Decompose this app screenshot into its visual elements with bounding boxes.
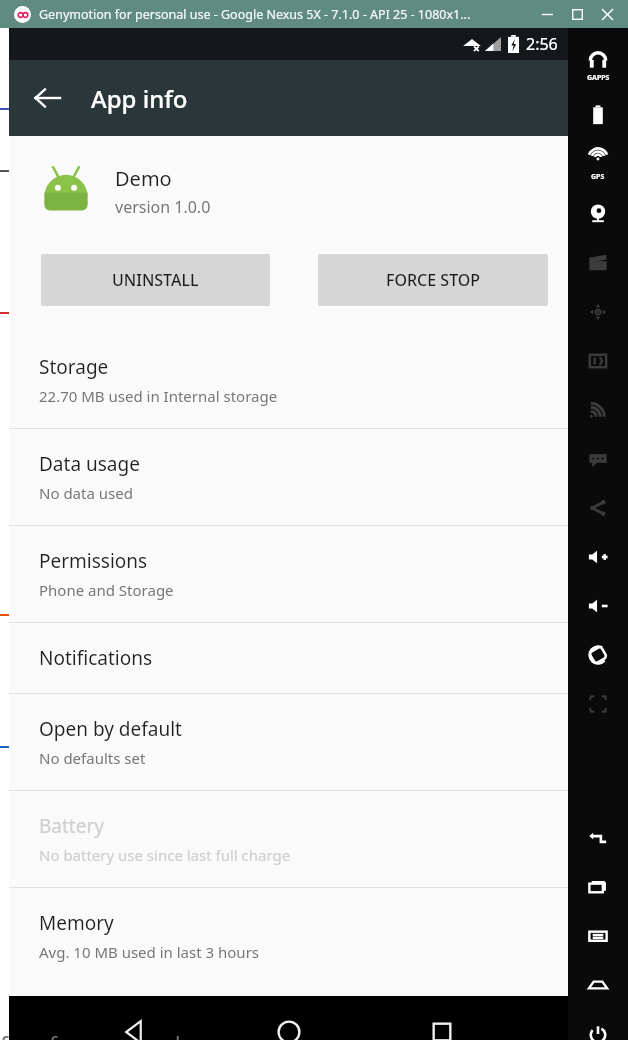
button[interactable]: FORCE STOP [318,254,548,306]
staticText: Battery [39,813,104,839]
staticText: Open by default [39,716,182,742]
button[interactable]: Home [261,1004,317,1040]
button[interactable]: Network [568,385,628,434]
staticText: Memory [39,910,114,936]
button[interactable]: Actual size 1:1 [568,679,628,728]
staticText: FORCE STOP [386,269,481,291]
staticText: free for personal use [0,1029,225,1040]
button[interactable]: Power [568,1009,628,1040]
button[interactable]: Notifications [9,623,568,693]
staticText: Genymotion for personal use - Google Nex… [39,6,471,23]
button[interactable]: Permissions [9,526,568,622]
staticText: Data usage [39,451,140,477]
staticText: Storage [39,354,109,380]
staticText: No data used [39,483,133,503]
button[interactable]: Accelerometer [568,287,628,336]
staticText: version 1.0.0 [115,196,211,218]
button[interactable]: Home [568,960,628,1009]
staticText: UNINSTALL [112,269,199,291]
button[interactable]: Camera [568,189,628,238]
button[interactable]: Volume down [568,581,628,630]
button[interactable]: Rotate [568,630,628,679]
staticText: Permissions [39,548,148,574]
button[interactable]: Screen record [568,238,628,287]
button[interactable]: GApps [568,40,628,90]
staticText: GAPPS [587,73,610,83]
staticText: 22.70 MB used in Internal storage [39,386,278,406]
button[interactable]: Open by default [9,694,568,790]
button[interactable]: UNINSTALL [41,254,270,306]
button[interactable]: Battery [568,90,628,139]
button[interactable]: Memory [9,888,568,984]
button[interactable]: Recent apps [568,862,628,911]
button[interactable]: Recent apps [414,1004,470,1040]
button[interactable]: SMS [568,434,628,483]
button[interactable]: Minimize [532,2,562,26]
staticText: No defaults set [39,748,146,768]
button[interactable]: Menu [568,911,628,960]
button[interactable]: Back [107,1004,163,1040]
staticText: Demo [115,165,172,192]
button[interactable]: Volume up [568,532,628,581]
button[interactable]: Battery [9,791,568,887]
button[interactable]: Storage [9,332,568,428]
button[interactable]: Share [568,483,628,532]
staticText: 2:56 [526,33,558,55]
button[interactable]: Back [568,813,628,862]
button[interactable]: Identifiers [568,336,628,385]
button[interactable]: Maximize [562,2,592,26]
staticText: GPS [591,172,605,182]
button[interactable]: Navigate up [23,74,71,122]
staticText: No battery use since last full charge [39,845,291,865]
staticText: App info [91,82,188,115]
button[interactable]: Data usage [9,429,568,525]
button[interactable]: Close [592,2,622,26]
staticText: Avg. 10 MB used in last 3 hours [39,942,260,962]
staticText: Notifications [39,645,153,671]
button[interactable]: GPS [568,139,628,189]
staticText: Phone and Storage [39,580,174,600]
